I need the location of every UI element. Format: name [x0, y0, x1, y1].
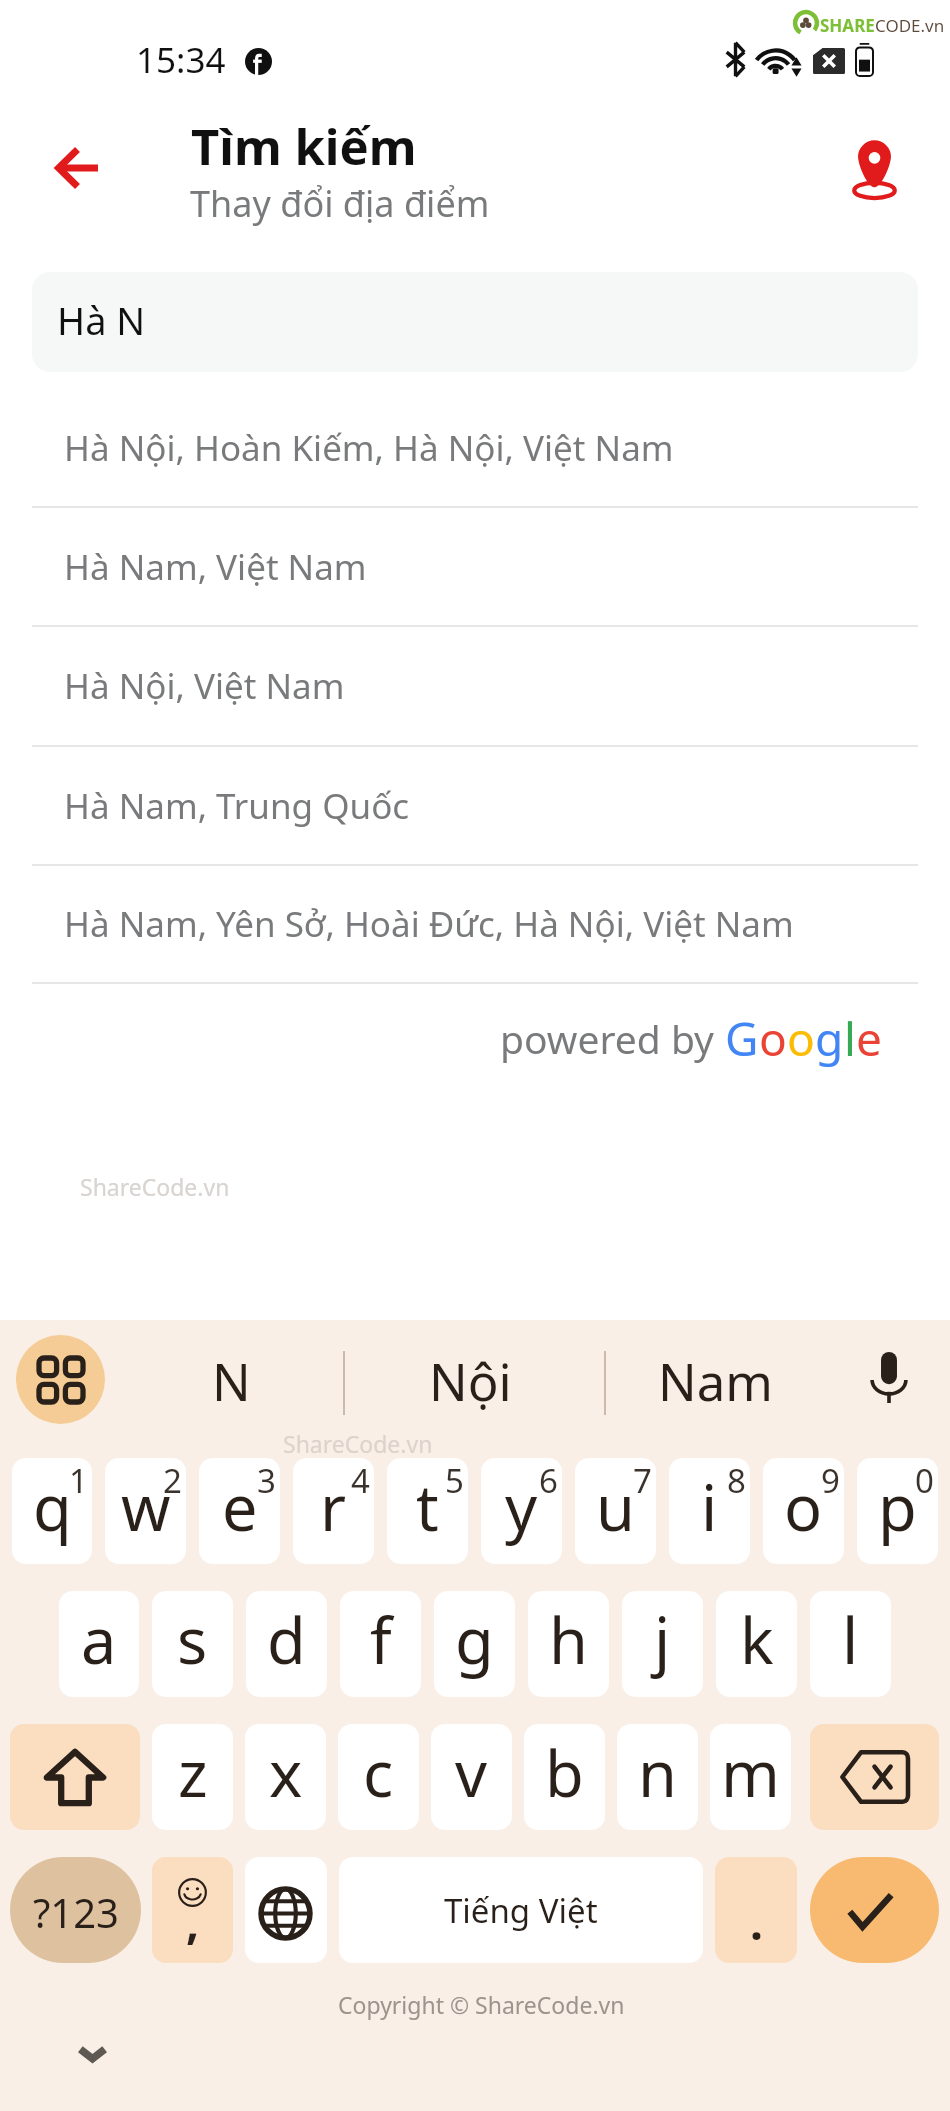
- button[interactable]: y: [481, 1458, 562, 1564]
- staticText: f: [370, 1597, 392, 1683]
- staticText: 6: [539, 1458, 558, 1503]
- button[interactable]: h: [528, 1591, 609, 1697]
- staticText: Hà N: [57, 294, 146, 346]
- button[interactable]: Bảng chọn bàn phím: [16, 1335, 105, 1424]
- staticText: a: [81, 1597, 117, 1683]
- button[interactable]: t: [387, 1458, 468, 1564]
- staticText: n: [638, 1730, 677, 1816]
- staticText: z: [178, 1730, 208, 1816]
- button[interactable]: Quay lại: [34, 127, 116, 207]
- staticText: 7: [633, 1458, 652, 1503]
- button[interactable]: a: [59, 1591, 139, 1697]
- staticText: powered by: [500, 1012, 725, 1065]
- staticText: Hà Nam, Yên Sở, Hoài Đức, Hà Nội, Việt N…: [64, 900, 794, 948]
- button[interactable]: l: [810, 1591, 891, 1697]
- button[interactable]: Tiếng Việt: [339, 1857, 703, 1963]
- staticText: o: [784, 1464, 823, 1550]
- staticText: l: [844, 1007, 856, 1070]
- button[interactable]: v: [431, 1724, 512, 1830]
- button[interactable]: Hà Nội, Việt Nam: [0, 627, 950, 745]
- staticText: ,: [186, 1890, 200, 1953]
- button[interactable]: f: [340, 1591, 421, 1697]
- staticText: 15:34: [136, 36, 226, 84]
- button[interactable]: Nội: [374, 1320, 567, 1445]
- button[interactable]: x: [245, 1724, 326, 1830]
- staticText: ?123: [33, 1885, 119, 1939]
- staticText: 5: [445, 1458, 464, 1503]
- button[interactable]: Shift: [10, 1724, 140, 1830]
- staticText: l: [842, 1597, 859, 1683]
- staticText: u: [596, 1464, 635, 1550]
- button[interactable]: Chọn vị trí trên bản đồ: [829, 120, 920, 219]
- staticText: Tiếng Việt: [444, 1888, 598, 1933]
- staticText: 0: [915, 1458, 934, 1503]
- button[interactable]: r: [293, 1458, 374, 1564]
- button[interactable]: p: [857, 1458, 938, 1564]
- button[interactable]: w: [105, 1458, 186, 1564]
- button[interactable]: q: [12, 1458, 92, 1564]
- staticText: 9: [821, 1458, 840, 1503]
- button[interactable]: s: [152, 1591, 233, 1697]
- button[interactable]: Hà Nam, Trung Quốc: [0, 747, 950, 864]
- button[interactable]: ?123: [10, 1857, 141, 1963]
- button[interactable]: g: [434, 1591, 515, 1697]
- button[interactable]: k: [716, 1591, 797, 1697]
- staticText: Nam: [658, 1346, 774, 1415]
- button[interactable]: Ẩn bàn phím: [52, 2014, 132, 2094]
- staticText: ShareCode.vn: [283, 1428, 433, 1459]
- button[interactable]: Đổi ngôn ngữ: [245, 1857, 327, 1963]
- button[interactable]: Dấu chấm: [715, 1857, 797, 1963]
- button[interactable]: Nhập bằng giọng nói: [852, 1340, 926, 1414]
- staticText: q: [33, 1464, 72, 1550]
- staticText: Hà Nội, Việt Nam: [64, 662, 345, 710]
- staticText: Hà Nam, Việt Nam: [64, 543, 367, 591]
- staticText: i: [701, 1464, 718, 1550]
- button[interactable]: Hà Nam, Yên Sở, Hoài Đức, Hà Nội, Việt N…: [0, 866, 950, 982]
- button[interactable]: o: [763, 1458, 844, 1564]
- staticText: j: [654, 1597, 671, 1683]
- button[interactable]: e: [199, 1458, 280, 1564]
- button[interactable]: Biểu tượng cảm xúc: [152, 1857, 233, 1963]
- button[interactable]: Nam: [619, 1320, 812, 1445]
- staticText: e: [222, 1464, 258, 1550]
- staticText: 2: [163, 1458, 182, 1503]
- staticText: s: [177, 1597, 208, 1683]
- staticText: g: [455, 1597, 494, 1683]
- button[interactable]: j: [622, 1591, 703, 1697]
- staticText: ShareCode.vn: [80, 1171, 230, 1202]
- staticText: h: [549, 1597, 588, 1683]
- staticText: v: [455, 1730, 488, 1816]
- button[interactable]: i: [669, 1458, 750, 1564]
- staticText: o: [759, 1007, 787, 1070]
- staticText: e: [856, 1007, 882, 1070]
- button[interactable]: Xoá: [810, 1724, 939, 1830]
- button[interactable]: z: [152, 1724, 233, 1830]
- button[interactable]: m: [710, 1724, 791, 1830]
- staticText: w: [121, 1464, 171, 1550]
- staticText: b: [545, 1730, 584, 1816]
- button[interactable]: Hà Nam, Việt Nam: [0, 508, 950, 625]
- button[interactable]: Hà Nội, Hoàn Kiếm, Hà Nội, Việt Nam: [0, 389, 950, 506]
- button[interactable]: Xong: [810, 1857, 939, 1963]
- staticText: Hà Nam, Trung Quốc: [64, 782, 410, 830]
- staticText: CODE.vn: [875, 14, 945, 37]
- button[interactable]: N: [135, 1320, 328, 1445]
- staticText: g: [815, 1007, 844, 1070]
- staticText: 1: [69, 1458, 88, 1503]
- staticText: Nội: [429, 1346, 512, 1415]
- staticText: x: [269, 1730, 303, 1816]
- button[interactable]: Hà N: [32, 272, 918, 372]
- staticText: d: [267, 1597, 306, 1683]
- button[interactable]: d: [246, 1591, 327, 1697]
- button[interactable]: u: [575, 1458, 656, 1564]
- staticText: o: [787, 1007, 815, 1070]
- staticText: k: [740, 1597, 774, 1683]
- button[interactable]: c: [338, 1724, 419, 1830]
- staticText: Tìm kiếm: [191, 113, 417, 180]
- button[interactable]: n: [617, 1724, 698, 1830]
- button[interactable]: b: [524, 1724, 605, 1830]
- staticText: m: [721, 1730, 780, 1816]
- staticText: Hà Nội, Hoàn Kiếm, Hà Nội, Việt Nam: [64, 424, 674, 472]
- staticText: Copyright © ShareCode.vn: [338, 1989, 625, 2020]
- staticText: N: [212, 1346, 251, 1415]
